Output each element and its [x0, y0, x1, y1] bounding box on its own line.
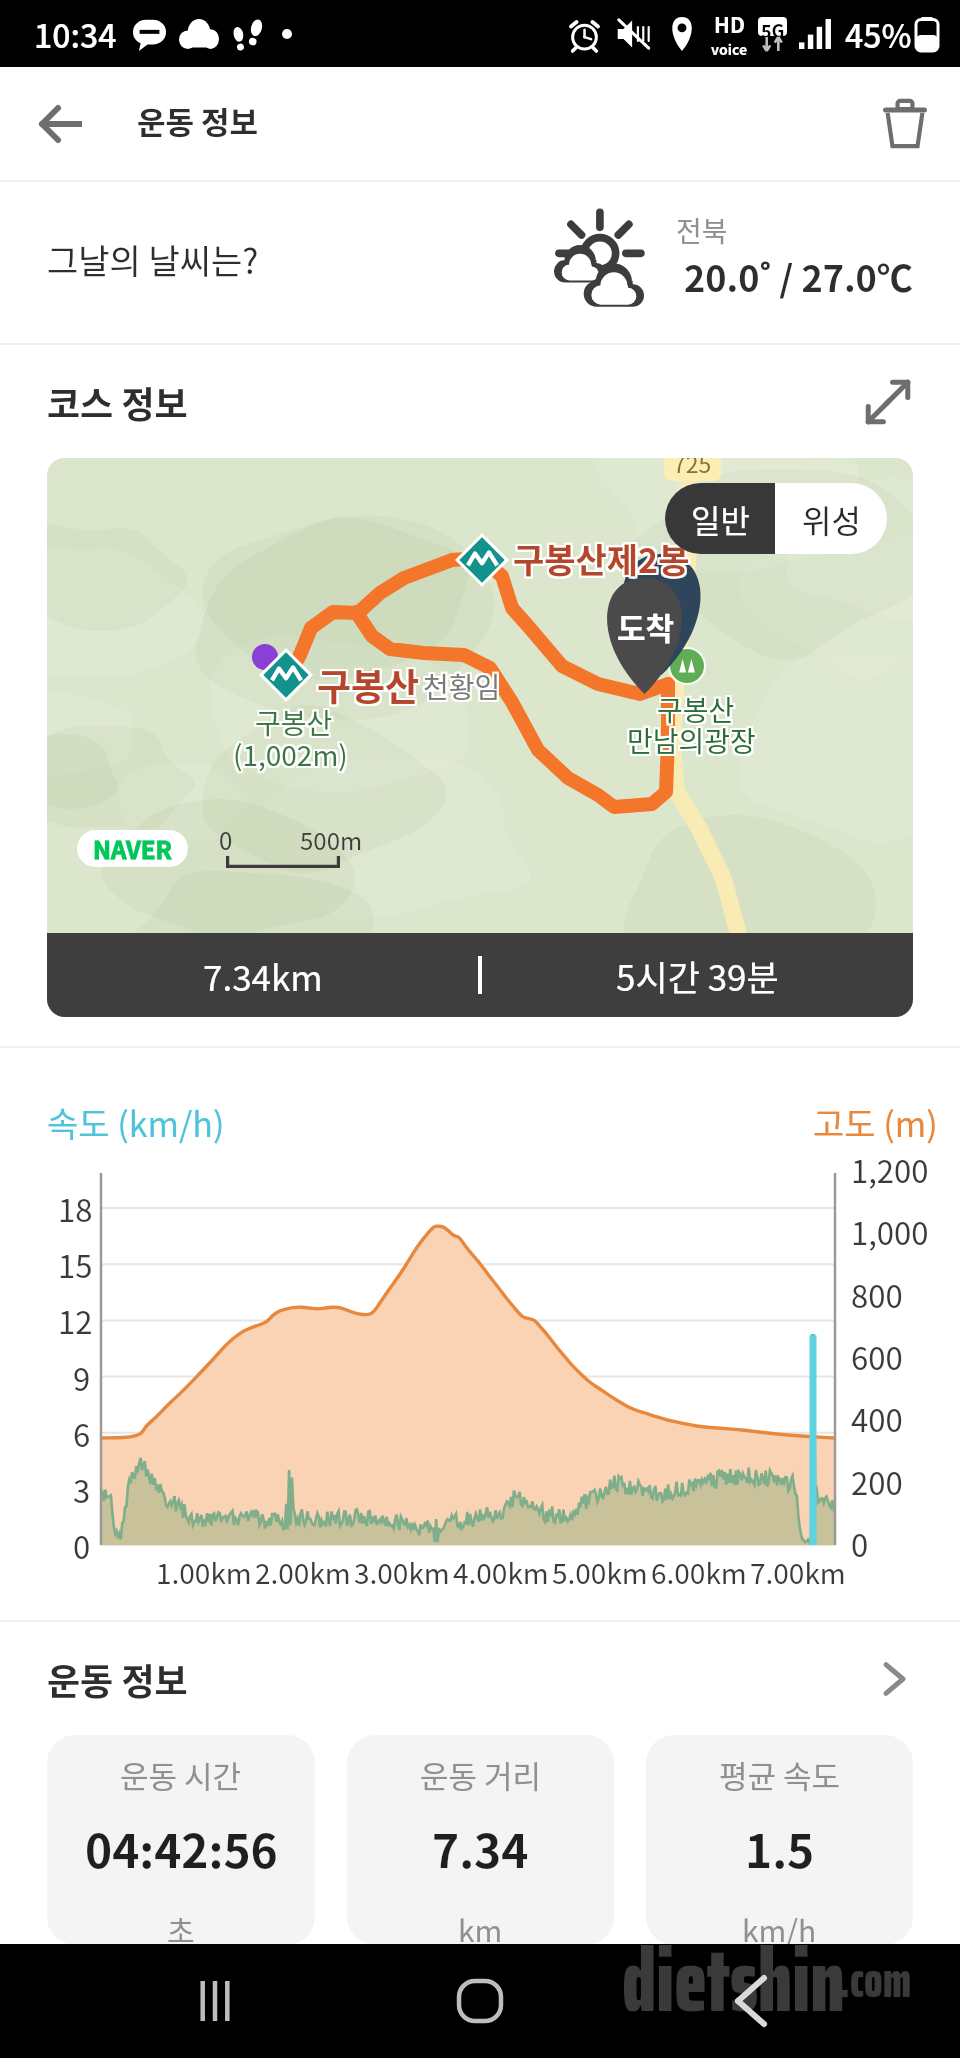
- staticText: 600: [851, 1334, 903, 1379]
- staticText: 운동 거리: [420, 1752, 542, 1797]
- staticText: 초: [167, 1907, 195, 1945]
- staticText: 운동 시간: [120, 1752, 242, 1797]
- staticText: 구봉산: [319, 660, 422, 714]
- staticText: 1.5: [745, 1815, 815, 1882]
- staticText: 구봉산: [253, 702, 331, 743]
- staticText: 만남의광장: [627, 720, 756, 761]
- staticText: 45%: [845, 11, 912, 57]
- staticText: 7.34: [432, 1815, 529, 1882]
- staticText: 만남의광장: [625, 718, 754, 759]
- staticText: (1,002m): [235, 736, 350, 777]
- staticText: (1,002m): [233, 732, 348, 773]
- button[interactable]: Expand map: [852, 366, 924, 438]
- staticText: 구봉산제2봉: [515, 536, 692, 585]
- staticText: 구봉산: [257, 704, 335, 745]
- staticText: 구봉산: [255, 702, 333, 743]
- staticText: 6.00km: [651, 1552, 747, 1593]
- staticText: 20.0˚ / 27.0℃: [684, 250, 913, 302]
- button[interactable]: 평균 속도: [646, 1735, 913, 1945]
- staticText: 구봉산: [659, 691, 737, 732]
- staticText: 구봉산: [257, 702, 335, 743]
- staticText: dietshin: [622, 1911, 845, 2025]
- staticText: 1,000: [851, 1209, 929, 1254]
- staticText: 0: [219, 822, 233, 857]
- button[interactable]: Back: [690, 1944, 810, 2058]
- staticText: km/h: [742, 1907, 817, 1945]
- staticText: 구봉산: [655, 691, 733, 732]
- staticText: 천황임: [425, 668, 503, 709]
- staticText: (1,002m): [235, 732, 350, 773]
- staticText: 고도 (m): [813, 1098, 938, 1147]
- staticText: 18: [58, 1186, 93, 1231]
- staticText: 3: [73, 1467, 91, 1512]
- staticText: 구봉산: [315, 660, 418, 714]
- staticText: 만남의광장: [629, 722, 758, 763]
- staticText: 만남의광장: [625, 720, 754, 761]
- staticText: 천황임: [423, 668, 501, 709]
- staticText: km: [458, 1907, 503, 1945]
- staticText: 구봉산제2봉: [511, 536, 688, 585]
- staticText: 도착: [617, 604, 675, 649]
- staticText: 평균 속도: [719, 1752, 841, 1797]
- staticText: 구봉산제2봉: [515, 534, 692, 583]
- staticText: 구봉산: [255, 700, 333, 741]
- button[interactable]: 725: [47, 458, 913, 1017]
- staticText: (1,002m): [235, 734, 350, 775]
- staticText: voice: [711, 39, 748, 59]
- button[interactable]: 일반: [665, 483, 775, 554]
- button[interactable]: 운동 정보: [0, 1622, 960, 1735]
- staticText: 구봉산: [657, 691, 735, 732]
- staticText: 구봉산: [317, 660, 420, 714]
- staticText: 구봉산: [655, 687, 733, 728]
- button[interactable]: Home: [420, 1944, 540, 2058]
- staticText: 구봉산제2봉: [513, 532, 690, 581]
- staticText: 구봉산: [657, 689, 735, 730]
- staticText: 4.00km: [453, 1552, 549, 1593]
- staticText: 7.34km: [203, 950, 323, 1001]
- staticText: 800: [851, 1272, 903, 1317]
- staticText: 200: [851, 1459, 903, 1504]
- staticText: 만남의광장: [629, 718, 758, 759]
- staticText: 구봉산: [655, 689, 733, 730]
- staticText: 400: [851, 1396, 903, 1441]
- staticText: 구봉산: [659, 689, 737, 730]
- staticText: 만남의광장: [627, 718, 756, 759]
- staticText: 일반: [691, 496, 750, 542]
- staticText: (1,002m): [231, 736, 346, 777]
- staticText: 6: [73, 1411, 91, 1456]
- staticText: 천황임: [421, 668, 499, 709]
- staticText: 천황임: [425, 664, 503, 705]
- staticText: 5시간 39분: [616, 950, 779, 1001]
- staticText: 구봉산: [319, 658, 422, 712]
- button[interactable]: Delete: [850, 67, 960, 180]
- staticText: 구봉산제2봉: [511, 532, 688, 581]
- staticText: (1,002m): [231, 732, 346, 773]
- staticText: 0: [73, 1523, 91, 1568]
- button[interactable]: 운동 거리: [347, 1735, 614, 1945]
- staticText: 천황임: [421, 666, 499, 707]
- staticText: 구봉산: [657, 687, 735, 728]
- staticText: HD: [714, 9, 745, 39]
- staticText: (1,002m): [231, 734, 346, 775]
- staticText: 구봉산: [659, 687, 737, 728]
- staticText: 만남의광장: [625, 722, 754, 763]
- staticText: 04:42:56: [85, 1815, 278, 1882]
- staticText: 7.00km: [750, 1552, 846, 1593]
- staticText: 5G: [761, 17, 785, 36]
- button[interactable]: Recents: [155, 1944, 275, 2058]
- staticText: 속도 (km/h): [47, 1098, 225, 1147]
- staticText: 위성: [802, 496, 861, 542]
- staticText: 구봉산제2봉: [515, 532, 692, 581]
- staticText: 3.00km: [354, 1552, 450, 1593]
- button[interactable]: 운동 시간: [47, 1735, 315, 1945]
- staticText: 구봉산: [253, 704, 331, 745]
- staticText: 구봉산: [317, 658, 420, 712]
- staticText: 10:34: [34, 11, 117, 57]
- staticText: 천황임: [421, 664, 499, 705]
- button[interactable]: 위성: [775, 483, 887, 554]
- staticText: 구봉산: [255, 704, 333, 745]
- button[interactable]: Back: [0, 67, 120, 180]
- staticText: (1,002m): [233, 736, 348, 777]
- staticText: 운동 정보: [47, 1653, 188, 1705]
- staticText: 구봉산: [319, 656, 422, 710]
